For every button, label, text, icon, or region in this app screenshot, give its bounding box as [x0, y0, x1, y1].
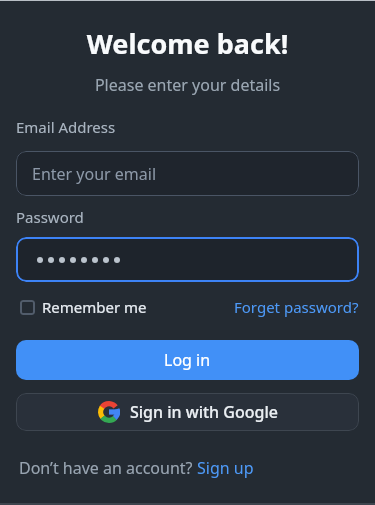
staticText: Log in [164, 349, 211, 371]
staticText: Password [16, 207, 84, 227]
staticText: Remember me [42, 297, 147, 317]
button[interactable]: Sign up [197, 457, 254, 479]
staticText: Please enter your details [16, 74, 359, 96]
button[interactable]: Enter your email [16, 151, 359, 196]
button[interactable] [16, 237, 359, 282]
button[interactable]: Remember me [20, 297, 147, 317]
button[interactable]: Log in [16, 340, 359, 380]
staticText: Enter your email [32, 163, 157, 185]
staticText: Email Address [16, 117, 116, 137]
staticText: Welcome back! [16, 25, 359, 62]
button[interactable]: Forget password? [234, 297, 359, 317]
staticText: Don’t have an account? [19, 457, 197, 479]
staticText: Sign in with Google [130, 401, 278, 423]
button[interactable]: Sign in with Google [16, 393, 359, 431]
